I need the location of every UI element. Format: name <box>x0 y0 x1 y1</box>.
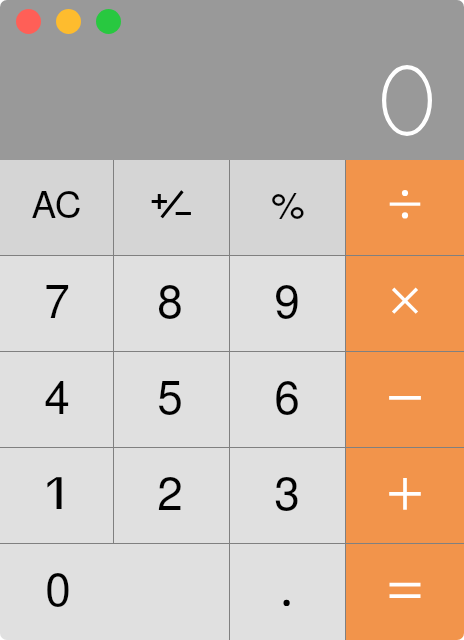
staticText: 8 <box>157 265 183 331</box>
button[interactable]: 7 <box>0 256 113 351</box>
button[interactable]: 0 <box>0 544 229 640</box>
button[interactable]: Equals <box>346 544 464 640</box>
button[interactable]: Plus minus <box>114 160 229 255</box>
button[interactable]: 5 <box>114 352 229 447</box>
button[interactable]: Multiply <box>346 256 464 351</box>
button[interactable]: Minus <box>346 352 464 447</box>
button[interactable]: Zoom <box>96 9 121 34</box>
button[interactable]: Plus <box>346 448 464 543</box>
staticText: 2 <box>157 457 183 523</box>
staticText: 7 <box>44 265 70 331</box>
staticText: % <box>271 175 305 229</box>
staticText: 3 <box>274 457 300 523</box>
button[interactable]: AC <box>0 160 113 255</box>
button[interactable]: Close <box>16 9 41 34</box>
staticText: 6 <box>274 361 300 427</box>
button[interactable]: 8 <box>114 256 229 351</box>
button[interactable]: 4 <box>0 352 113 447</box>
button[interactable]: Decimal point <box>230 544 345 640</box>
button[interactable]: 9 <box>230 256 345 351</box>
button[interactable]: 3 <box>230 448 345 543</box>
button[interactable]: 2 <box>114 448 229 543</box>
button[interactable]: % <box>230 160 345 255</box>
button[interactable]: Divide <box>346 160 464 255</box>
staticText: 0 <box>45 553 71 619</box>
staticText: 5 <box>157 361 183 427</box>
staticText: AC <box>31 176 82 229</box>
staticText: 4 <box>44 361 70 427</box>
staticText: 9 <box>274 265 300 331</box>
button[interactable]: Minimize <box>56 9 81 34</box>
button[interactable]: One <box>0 448 113 543</box>
button[interactable]: 6 <box>230 352 345 447</box>
